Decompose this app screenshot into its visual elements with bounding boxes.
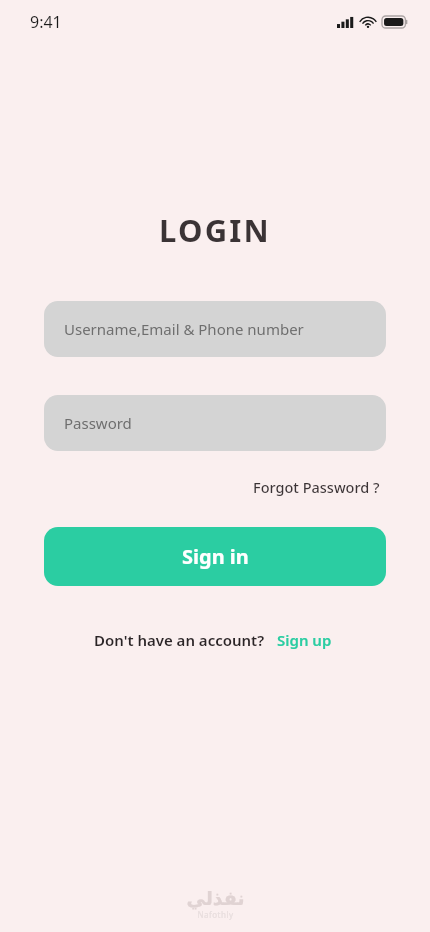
staticText: نفذلي: [186, 887, 245, 909]
staticText: Password: [64, 413, 132, 433]
staticText: Forgot Password ?: [253, 477, 380, 497]
staticText: LOGIN: [159, 209, 271, 251]
staticText: Sign up: [277, 630, 332, 650]
button[interactable]: Sign up: [265, 626, 336, 654]
staticText: Don't have an account?: [94, 630, 265, 650]
button[interactable]: Username,Email & Phone number: [44, 301, 386, 357]
staticText: 9:41: [30, 11, 62, 33]
button[interactable]: Sign in: [44, 527, 386, 586]
button[interactable]: Password: [44, 395, 386, 451]
staticText: Sign in: [182, 543, 249, 570]
staticText: Username,Email & Phone number: [64, 319, 304, 339]
staticText: Nafothly: [197, 909, 234, 920]
button[interactable]: Forgot Password ?: [249, 473, 384, 501]
